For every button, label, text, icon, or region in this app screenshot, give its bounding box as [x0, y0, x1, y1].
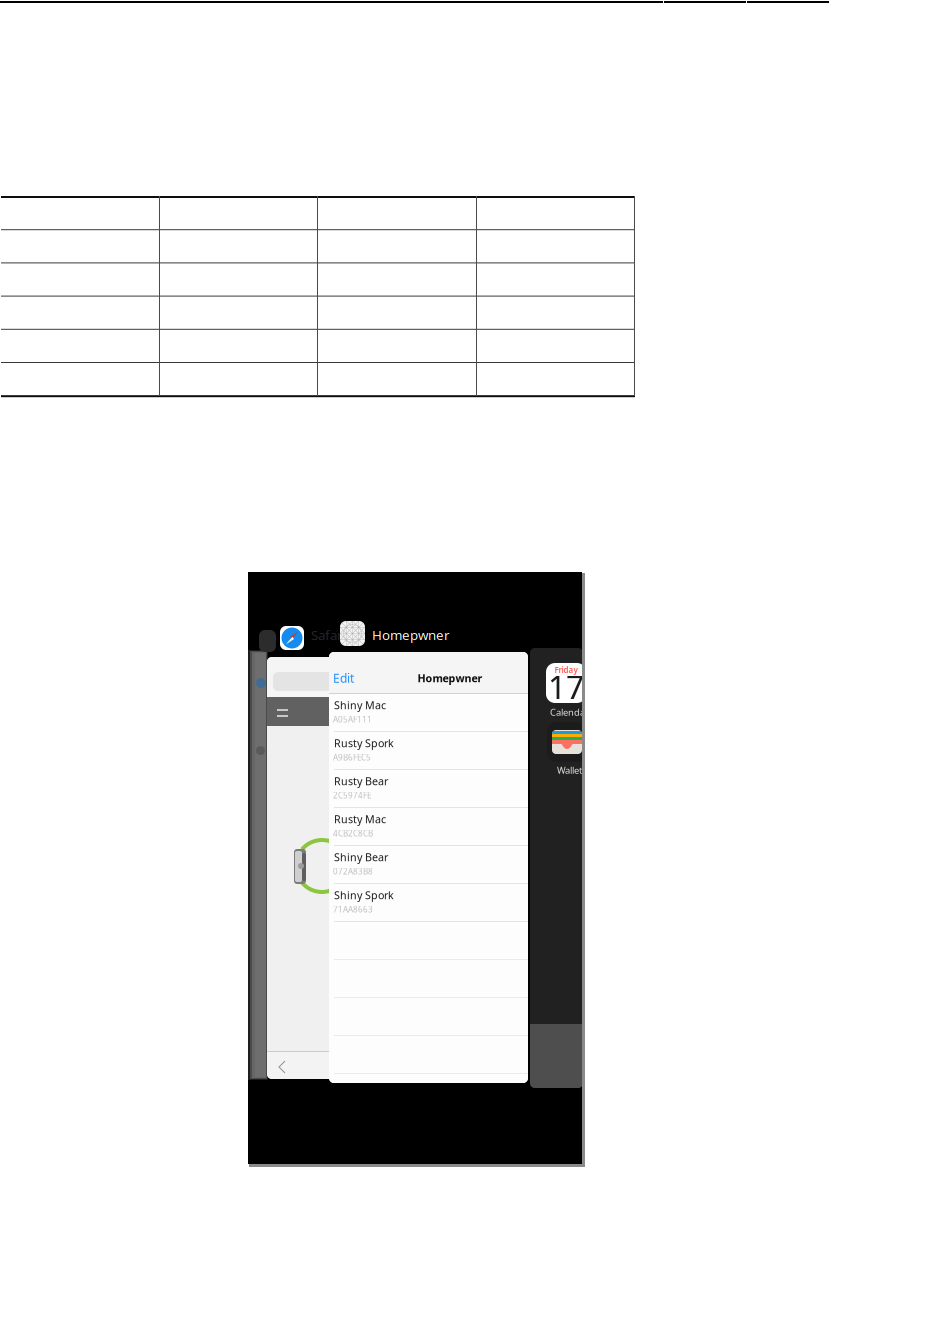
staticText: Homepwner — [417, 671, 482, 685]
staticText: 71AA8663 — [333, 904, 373, 915]
staticText: Edit — [333, 670, 354, 686]
staticText: Safari — [311, 626, 346, 644]
staticText: Wallet — [557, 764, 582, 776]
staticText: Shiny Bear — [334, 850, 388, 864]
staticText: Rusty Mac — [334, 812, 386, 826]
staticText: 072A83B8 — [333, 866, 373, 877]
staticText: Shiny Mac — [334, 698, 386, 712]
staticText: 17 — [548, 666, 584, 708]
staticText: A9B6FEC5 — [333, 752, 371, 763]
button[interactable]: Edit — [333, 668, 363, 688]
staticText: Rusty Spork — [334, 736, 394, 750]
staticText: Homepwner — [372, 626, 450, 644]
staticText: Rusty Bear — [334, 774, 388, 788]
staticText: Friday — [554, 665, 577, 675]
button[interactable]: Rusty Bear — [329, 770, 528, 808]
staticText: Calendar — [550, 706, 589, 718]
button[interactable]: Rusty Mac — [329, 808, 528, 846]
button[interactable]: Shiny Bear — [329, 846, 528, 884]
button[interactable]: Rusty Spork — [329, 732, 528, 770]
staticText: 4CB2C8CB — [333, 828, 373, 839]
staticText: Shiny Spork — [334, 888, 394, 902]
button[interactable]: Shiny Mac — [329, 694, 528, 732]
button[interactable]: Shiny Spork — [329, 884, 528, 922]
staticText: A05AF111 — [333, 714, 372, 725]
staticText: 2C5974FE — [333, 790, 371, 801]
